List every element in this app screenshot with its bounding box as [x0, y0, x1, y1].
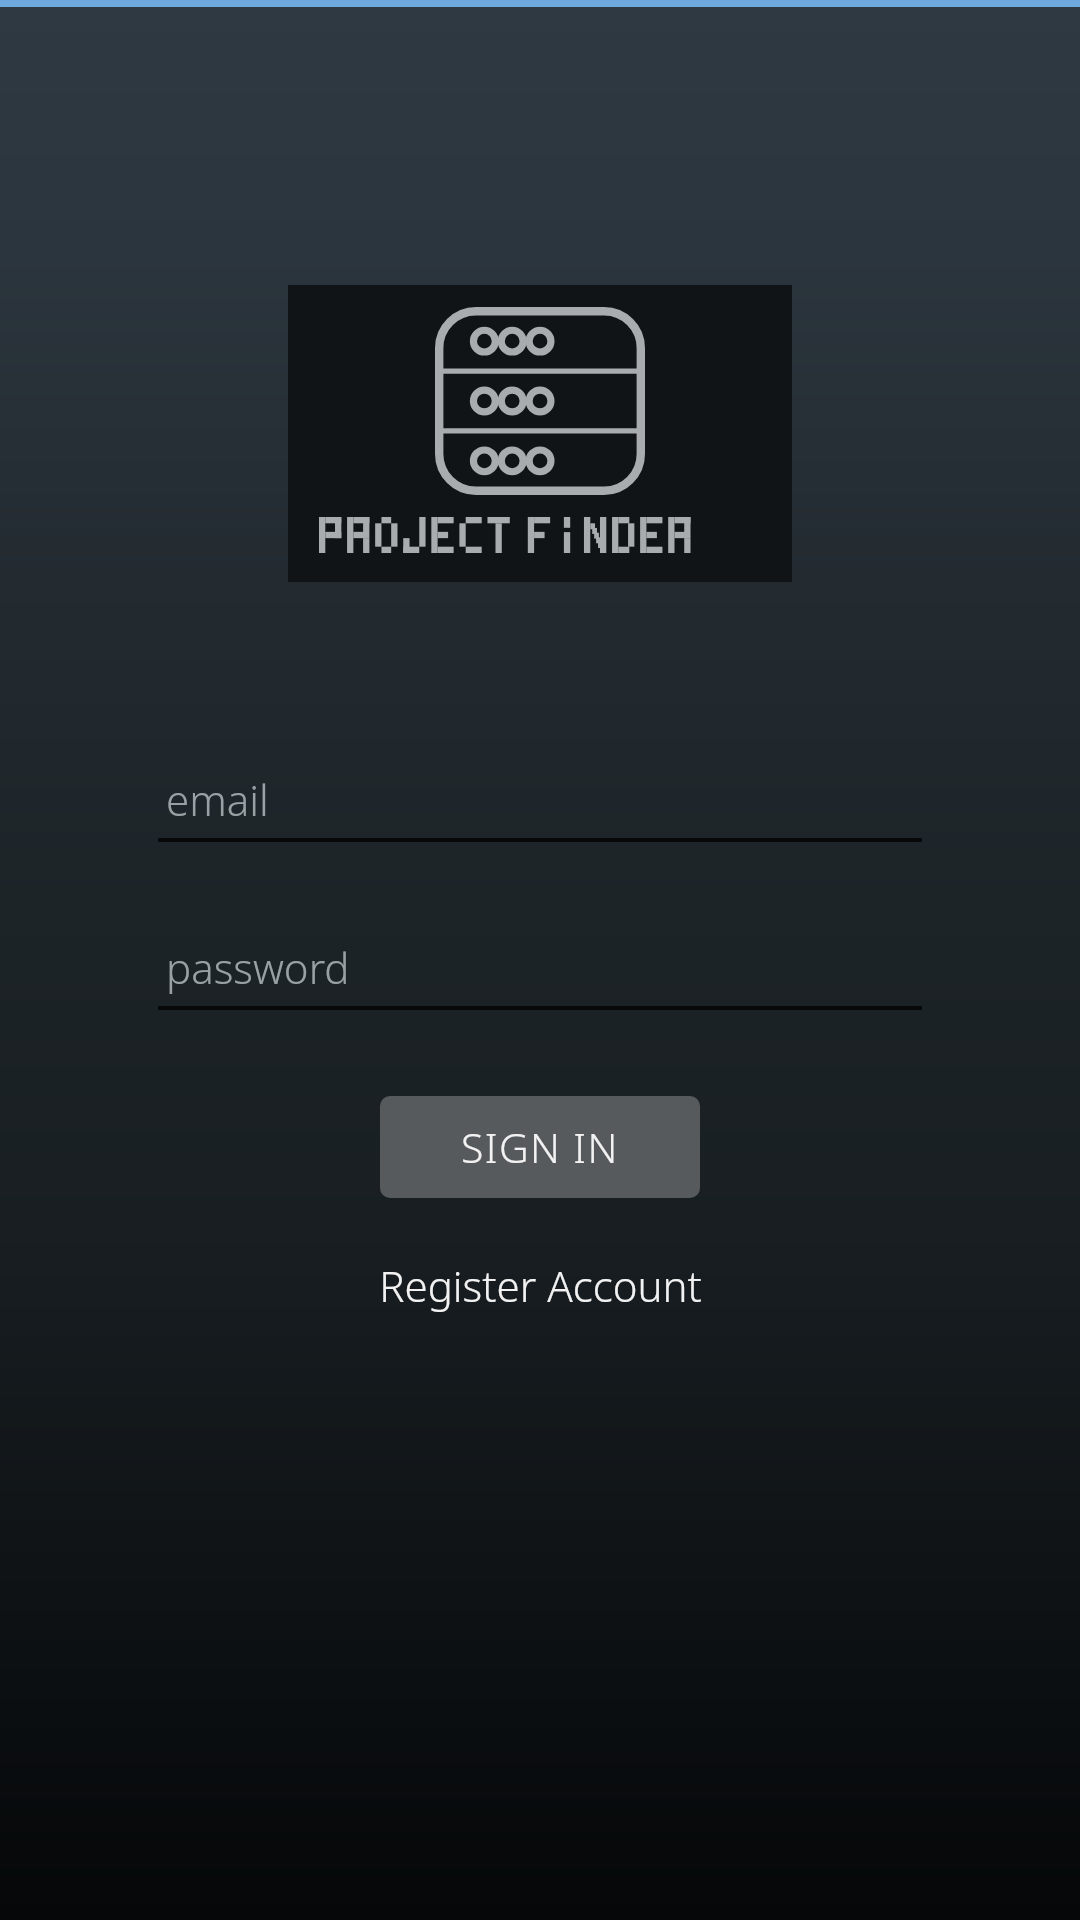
staticText: password	[166, 939, 350, 996]
button[interactable]: email	[158, 762, 922, 842]
staticText: Register Account	[379, 1257, 702, 1314]
button[interactable]: Register Account	[340, 1250, 740, 1320]
other: PROJECT FINDER	[319, 517, 761, 553]
staticText: SIGN IN	[461, 1119, 619, 1175]
staticText: email	[166, 771, 269, 828]
button[interactable]: SIGN IN	[380, 1096, 700, 1198]
other: Project Finder logo	[435, 307, 645, 495]
button[interactable]: password	[158, 930, 922, 1010]
